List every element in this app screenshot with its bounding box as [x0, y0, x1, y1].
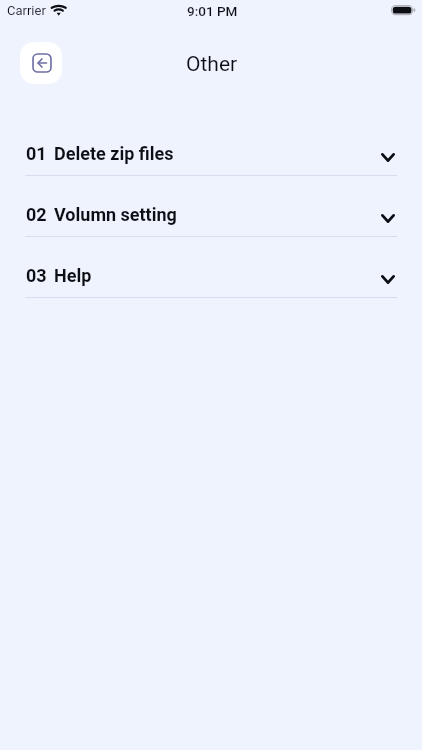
staticText: Volumn setting [54, 204, 177, 225]
button[interactable]: Back [20, 42, 62, 84]
button[interactable]: 01 [0, 130, 422, 191]
staticText: 01 [26, 143, 47, 164]
staticText: Carrier [7, 3, 46, 18]
staticText: Delete zip files [54, 143, 174, 164]
button[interactable]: 03 [0, 252, 422, 313]
staticText: 9:01 PM [187, 3, 238, 19]
staticText: 03 [26, 265, 47, 286]
staticText: 02 [26, 204, 47, 225]
staticText: Other [186, 52, 238, 77]
button[interactable]: 02 [0, 191, 422, 252]
staticText: Help [54, 265, 92, 286]
